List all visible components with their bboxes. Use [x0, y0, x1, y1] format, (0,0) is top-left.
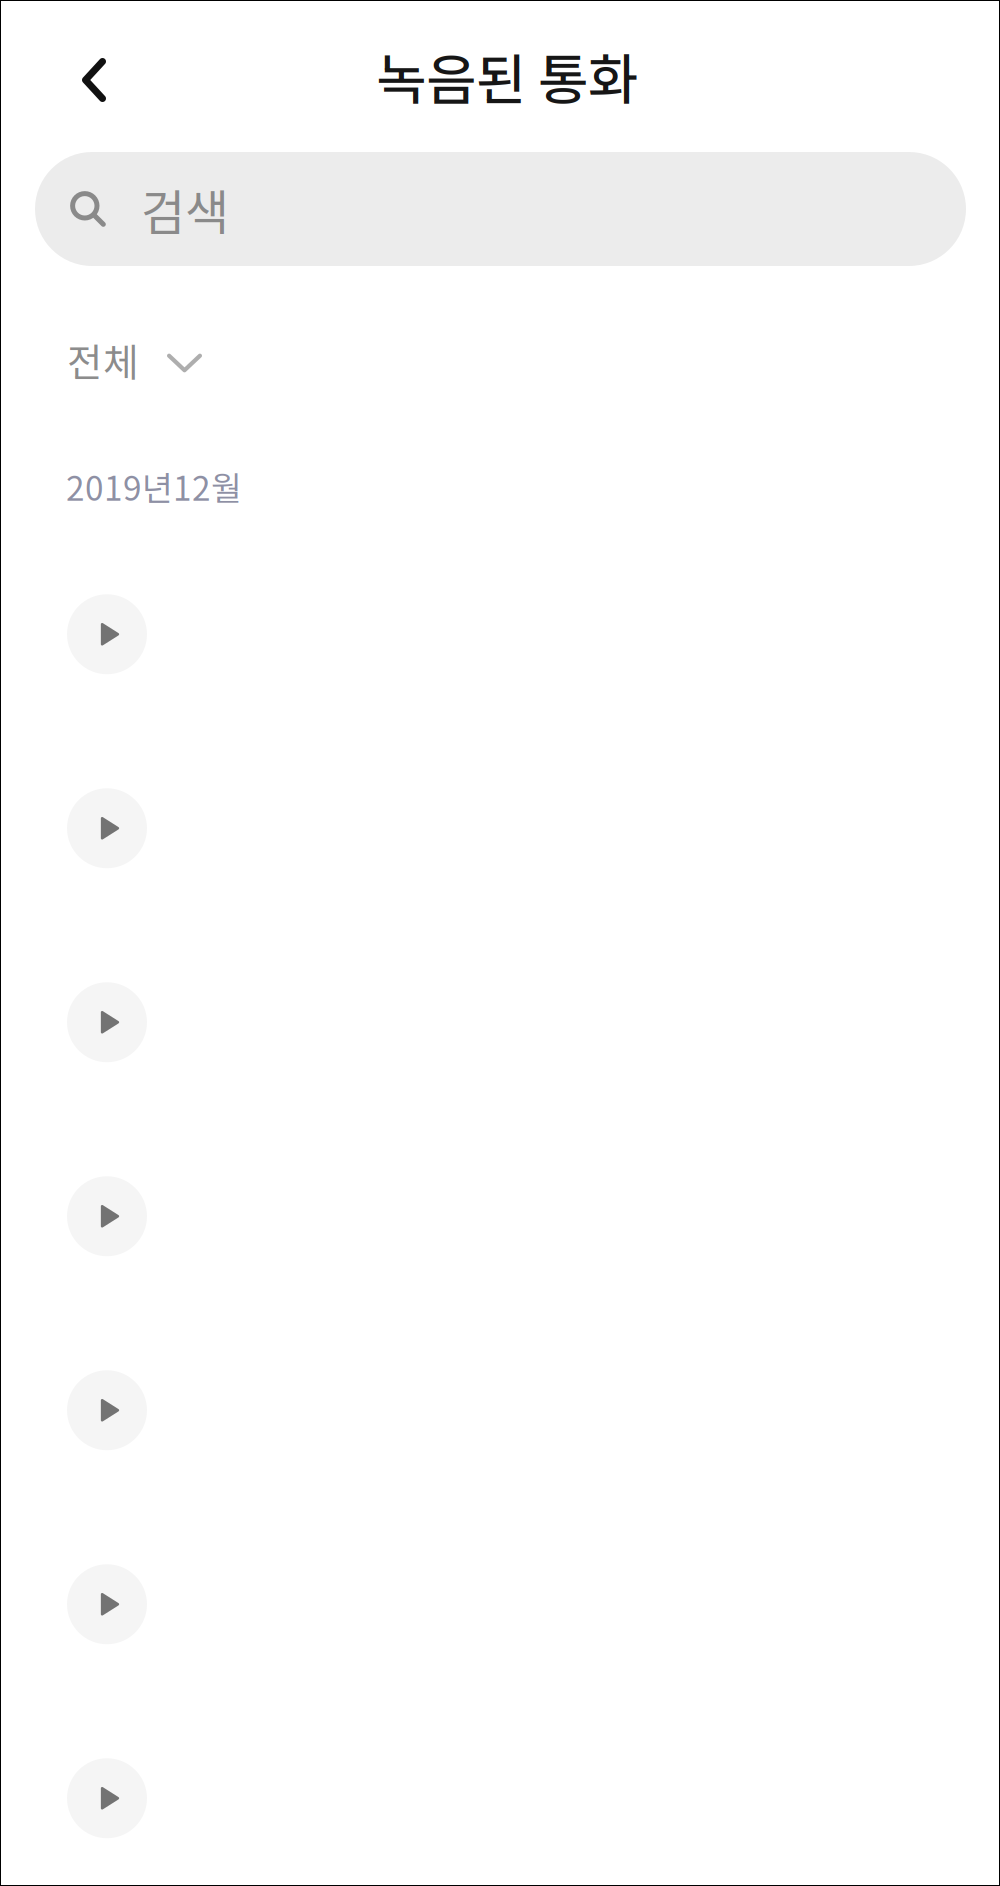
- button[interactable]: Recording: [0, 925, 1000, 1119]
- button[interactable]: Play: [67, 594, 147, 674]
- button[interactable]: Play: [67, 982, 147, 1062]
- button[interactable]: Recording: [0, 1119, 1000, 1313]
- staticText: 검색: [141, 174, 229, 244]
- button[interactable]: 전체: [0, 266, 202, 412]
- button[interactable]: Recording: [0, 1313, 1000, 1507]
- button[interactable]: Play: [67, 1758, 147, 1838]
- button[interactable]: Play: [67, 1564, 147, 1644]
- button[interactable]: Recording: [0, 1507, 1000, 1701]
- button[interactable]: Recording: [0, 731, 1000, 925]
- button[interactable]: 검색: [35, 152, 966, 266]
- button[interactable]: Play: [67, 1370, 147, 1450]
- button[interactable]: Recording: [0, 1701, 1000, 1886]
- button[interactable]: Play: [67, 1176, 147, 1256]
- button[interactable]: Recording: [0, 537, 1000, 731]
- button[interactable]: Back: [51, 37, 137, 123]
- staticText: 녹음된 통화: [376, 36, 638, 116]
- staticText: 2019년12월: [66, 462, 242, 510]
- staticText: 전체: [67, 332, 139, 388]
- button[interactable]: Play: [67, 788, 147, 868]
